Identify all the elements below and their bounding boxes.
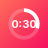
staticText: 0:30 [11, 17, 36, 30]
